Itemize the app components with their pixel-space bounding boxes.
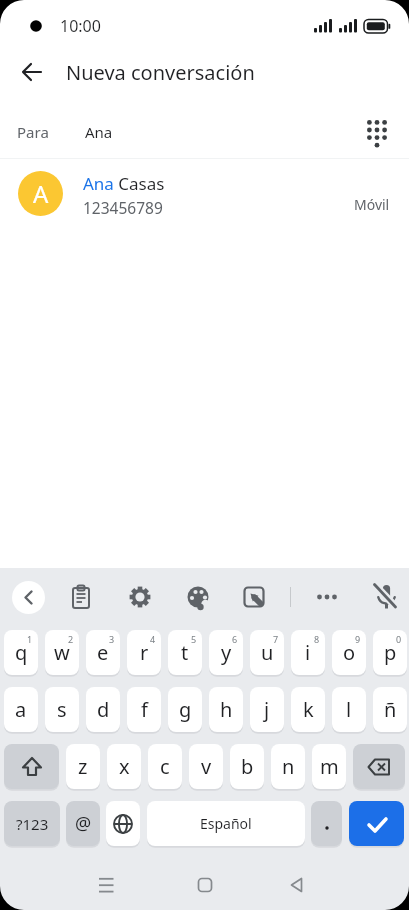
button[interactable]: m xyxy=(312,744,346,789)
staticText: e xyxy=(97,639,109,666)
staticText: u xyxy=(261,639,274,666)
button[interactable]: g xyxy=(168,687,202,732)
staticText: 1 xyxy=(27,633,33,645)
staticText: Nueva conversación xyxy=(66,59,255,86)
staticText: g xyxy=(179,696,192,723)
staticText: c xyxy=(160,753,170,780)
staticText: p xyxy=(384,639,397,666)
staticText: j xyxy=(264,696,270,723)
button[interactable]: j xyxy=(250,687,284,732)
button[interactable]: @ xyxy=(66,801,100,846)
button[interactable]: ?123 xyxy=(4,801,60,846)
button[interactable]: Para xyxy=(0,105,409,158)
staticText: a xyxy=(15,696,27,723)
staticText: s xyxy=(57,696,67,723)
staticText: h xyxy=(220,696,233,723)
button[interactable] xyxy=(236,579,272,615)
staticText: m xyxy=(320,753,339,780)
button[interactable]: h xyxy=(209,687,243,732)
staticText: t xyxy=(181,639,189,666)
button[interactable] xyxy=(311,801,342,846)
staticText: Ana xyxy=(85,122,113,142)
staticText: b xyxy=(241,753,254,780)
button[interactable]: s xyxy=(45,687,79,732)
button[interactable]: w xyxy=(45,630,79,675)
staticText: Ana Casas xyxy=(83,172,165,195)
button[interactable] xyxy=(363,118,391,146)
staticText: 5 xyxy=(191,633,197,645)
staticText: d xyxy=(97,696,110,723)
staticText: 7 xyxy=(273,633,279,645)
staticText: k xyxy=(303,696,314,723)
button[interactable]: c xyxy=(148,744,182,789)
staticText: Español xyxy=(200,814,252,833)
button[interactable]: l xyxy=(332,687,366,732)
staticText: 4 xyxy=(150,633,156,645)
button[interactable]: A xyxy=(0,161,409,226)
staticText: 0 xyxy=(396,633,402,645)
button[interactable] xyxy=(353,744,405,789)
staticText: o xyxy=(343,639,356,666)
staticText: @ xyxy=(75,811,92,836)
staticText: l xyxy=(346,696,352,723)
button[interactable]: v xyxy=(189,744,223,789)
staticText: v xyxy=(201,753,212,780)
staticText: x xyxy=(119,753,130,780)
button[interactable] xyxy=(12,52,52,92)
staticText: 10:00 xyxy=(60,15,101,37)
staticText: z xyxy=(78,753,88,780)
button[interactable]: a xyxy=(4,687,38,732)
button[interactable]: e xyxy=(86,630,120,675)
staticText: 8 xyxy=(314,633,320,645)
button[interactable] xyxy=(349,801,404,846)
button[interactable] xyxy=(106,801,140,846)
staticText: Para xyxy=(17,122,49,142)
staticText: 3 xyxy=(109,633,115,645)
staticText: ñ xyxy=(384,696,397,723)
staticText: 9 xyxy=(355,633,361,645)
button[interactable]: o xyxy=(332,630,366,675)
button[interactable]: b xyxy=(230,744,264,789)
button[interactable]: k xyxy=(291,687,325,732)
button[interactable]: t xyxy=(168,630,202,675)
staticText: q xyxy=(15,639,28,666)
staticText: ?123 xyxy=(16,814,49,834)
button[interactable]: y xyxy=(209,630,243,675)
staticText: A xyxy=(33,177,49,210)
button[interactable]: p xyxy=(373,630,407,675)
button[interactable] xyxy=(122,579,158,615)
button[interactable] xyxy=(63,579,99,615)
staticText: Móvil xyxy=(354,195,390,214)
staticText: 123456789 xyxy=(83,197,163,218)
button[interactable]: q xyxy=(4,630,38,675)
button[interactable]: d xyxy=(86,687,120,732)
staticText: n xyxy=(282,753,295,780)
button[interactable]: f xyxy=(127,687,161,732)
button[interactable] xyxy=(367,579,403,615)
staticText: f xyxy=(141,696,148,723)
button[interactable]: n xyxy=(271,744,305,789)
button[interactable] xyxy=(195,875,215,895)
button[interactable] xyxy=(4,744,59,789)
button[interactable]: Español xyxy=(147,801,305,846)
button[interactable]: x xyxy=(107,744,141,789)
button[interactable]: r xyxy=(127,630,161,675)
button[interactable] xyxy=(12,581,45,614)
button[interactable] xyxy=(96,875,116,895)
button[interactable]: u xyxy=(250,630,284,675)
staticText: r xyxy=(140,639,149,666)
button[interactable]: ñ xyxy=(373,687,407,732)
button[interactable] xyxy=(180,579,216,615)
staticText: w xyxy=(54,639,70,666)
button[interactable]: z xyxy=(66,744,100,789)
button[interactable] xyxy=(309,579,345,615)
staticText: 6 xyxy=(232,633,238,645)
button[interactable]: i xyxy=(291,630,325,675)
staticText: y xyxy=(221,639,232,666)
staticText: 2 xyxy=(68,633,74,645)
button[interactable] xyxy=(287,875,307,895)
staticText: i xyxy=(305,639,311,666)
